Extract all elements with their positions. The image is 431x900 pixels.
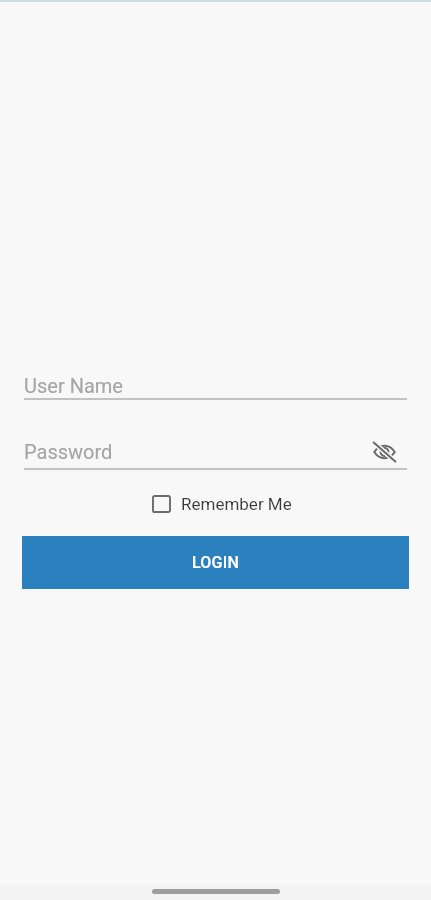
staticText: LOGIN [192, 553, 239, 572]
button[interactable]: User Name [0, 374, 431, 400]
staticText: Password [24, 440, 113, 463]
staticText: User Name [24, 374, 123, 397]
button[interactable]: LOGIN [22, 536, 409, 589]
staticText: Remember Me [181, 494, 292, 514]
button[interactable]: Remember Me [152, 494, 292, 514]
button[interactable]: Password [24, 444, 407, 468]
button[interactable]: Show password [367, 440, 401, 464]
